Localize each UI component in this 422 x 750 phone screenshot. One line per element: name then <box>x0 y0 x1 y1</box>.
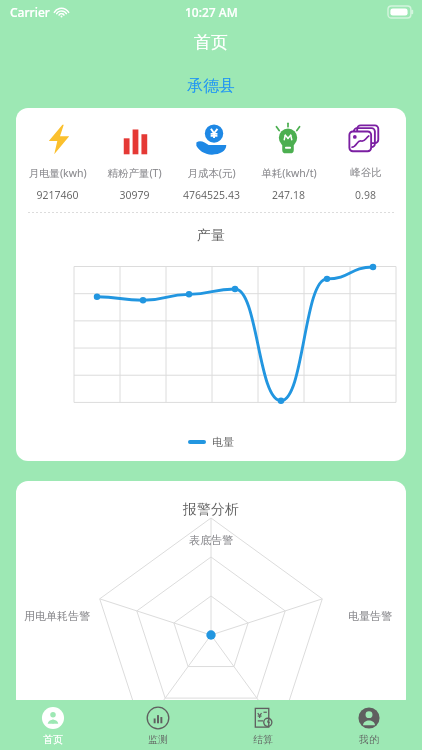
staticText: 结算 <box>253 733 273 746</box>
button[interactable]: 我的 <box>316 700 422 750</box>
other: 首页 <box>41 706 65 730</box>
other: 监测 <box>146 706 170 730</box>
staticText: 精粉产量(T) <box>107 166 162 180</box>
staticText: 首页 <box>43 733 63 746</box>
staticText: 单耗(kwh/t) <box>261 166 317 180</box>
staticText: 9217460 <box>36 188 79 202</box>
other: 结算 <box>251 706 275 730</box>
staticText: 月成本(元) <box>187 166 236 180</box>
staticText: 10:27 AM <box>185 4 238 20</box>
staticText: 监测 <box>148 733 168 746</box>
staticText: 30979 <box>119 188 150 202</box>
staticText: Carrier <box>10 4 50 20</box>
staticText: 峰谷比 <box>350 166 382 179</box>
staticText: 报警分析 <box>16 501 406 519</box>
staticText: 产量 <box>16 227 406 245</box>
staticText: 247.18 <box>272 188 305 202</box>
staticText: 电量告警 <box>348 609 392 623</box>
staticText: 4764525.43 <box>183 188 240 202</box>
staticText: 表底告警 <box>189 533 233 547</box>
button[interactable]: 首页 <box>0 700 105 750</box>
staticText: 承德县 <box>187 76 235 96</box>
staticText: 我的 <box>359 733 379 746</box>
button[interactable]: 监测 <box>105 700 210 750</box>
staticText: 0.98 <box>355 188 376 202</box>
other: 我的 <box>357 706 381 730</box>
button[interactable]: 结算 <box>210 700 316 750</box>
staticText: 用电单耗告警 <box>24 609 90 623</box>
staticText: 首页 <box>194 32 228 53</box>
staticText: 月电量(kwh) <box>28 166 87 180</box>
staticText: 电量 <box>212 435 234 449</box>
